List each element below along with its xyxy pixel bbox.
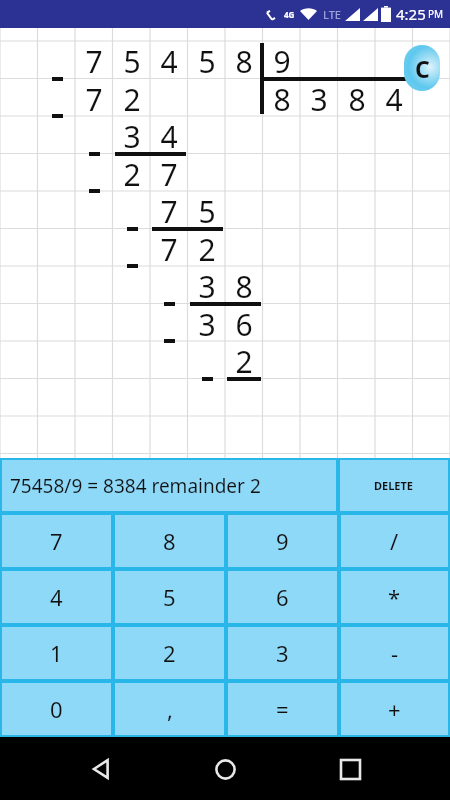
button[interactable]: 7 [2,515,111,567]
staticText: 8 [163,526,176,556]
staticText: 3 [198,266,216,304]
staticText: 0 [50,694,63,724]
staticText: 3 [198,304,216,342]
button[interactable]: Recents [326,745,374,793]
button[interactable]: 3 [228,627,337,679]
staticText: 8 [235,266,253,304]
staticText: 7 [85,41,103,79]
button[interactable]: + [341,683,448,735]
staticText: 2 [123,79,141,117]
staticText: 6 [276,582,289,612]
staticText: 3 [310,79,328,117]
staticText: 7 [85,79,103,117]
staticText: 2 [235,341,253,379]
staticText: = [276,694,289,724]
button[interactable]: 8 [115,515,224,567]
button[interactable]: * [341,571,448,623]
staticText: C [415,53,430,84]
staticText: - [391,638,399,668]
button[interactable]: , [115,683,224,735]
staticText: 3 [276,638,289,668]
staticText: 7 [50,526,63,556]
staticText: 9 [273,41,291,79]
staticText: 2 [163,638,176,668]
staticText: 5 [163,582,176,612]
staticText: LTE [323,7,341,22]
staticText: 8 [235,41,253,79]
staticText: + [388,694,401,724]
staticText: 2 [123,154,141,192]
staticText: , [167,694,173,724]
staticText: 5 [123,41,141,79]
button[interactable]: 6 [228,571,337,623]
button[interactable]: 2 [115,627,224,679]
button[interactable]: 5 [115,571,224,623]
staticText: 9 [276,526,289,556]
button[interactable]: DELETE [340,460,448,511]
staticText: * [388,582,401,612]
button[interactable]: / [341,515,448,567]
staticText: DELETE [374,478,414,493]
staticText: 1 [50,638,63,668]
staticText: 75458/9 = 8384 remainder 2 [10,473,261,499]
staticText: 4:25 [396,4,426,24]
staticText: 4 [160,41,178,79]
staticText: 4 [160,116,178,154]
button[interactable]: 1 [2,627,111,679]
staticText: 8 [348,79,366,117]
staticText: 5 [198,41,216,79]
staticText: 8 [273,79,291,117]
button[interactable]: 9 [228,515,337,567]
button[interactable]: Back [77,745,125,793]
staticText: 7 [160,229,178,267]
staticText: 7 [160,191,178,229]
button[interactable]: - [341,627,448,679]
staticText: 7 [160,154,178,192]
staticText: 4 [50,582,63,612]
staticText: 3 [123,116,141,154]
button[interactable]: Clear [404,45,440,91]
button[interactable]: Home [201,745,249,793]
staticText: 6 [235,304,253,342]
button[interactable]: 4 [2,571,111,623]
staticText: PM [428,7,444,21]
button[interactable]: = [228,683,337,735]
staticText: 4G [284,9,295,20]
button[interactable]: 75458/9 = 8384 remainder 2 [2,460,336,511]
staticText: / [390,526,399,556]
button[interactable]: 0 [2,683,111,735]
staticText: 4 [385,79,403,117]
staticText: 2 [198,229,216,267]
staticText: 5 [198,191,216,229]
